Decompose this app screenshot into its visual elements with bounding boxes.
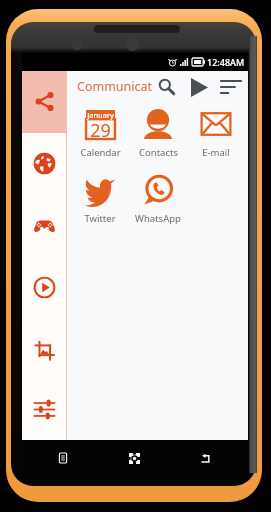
staticText: E-mail [202,146,230,159]
button[interactable]: E-mail [187,109,245,159]
button[interactable]: Share [22,71,67,133]
button[interactable]: Back [190,445,220,471]
staticText: WhatsApp [135,212,181,225]
button[interactable]: WhatsApp [129,175,187,225]
button[interactable]: Sort [216,74,246,100]
staticText: January [87,110,114,120]
button[interactable]: Home [119,445,149,471]
button[interactable]: Search [154,74,178,98]
button[interactable]: Media [22,257,67,319]
button[interactable]: Tools [22,381,67,440]
button[interactable]: Play [186,74,212,100]
button[interactable]: Browser [22,133,67,195]
staticText: Twitter [84,212,116,225]
button[interactable]: Twitter [71,175,129,225]
staticText: 12:48AM [207,56,245,68]
staticText: Communicat [77,78,153,95]
button[interactable]: Contacts [129,109,187,159]
button[interactable]: Photos [22,319,67,381]
staticText: Calendar [80,146,121,159]
staticText: Contacts [139,146,178,159]
button[interactable]: January [71,109,129,159]
staticText: 29 [90,118,111,137]
button[interactable]: Games [22,195,67,257]
button[interactable]: Recent apps [48,445,78,471]
